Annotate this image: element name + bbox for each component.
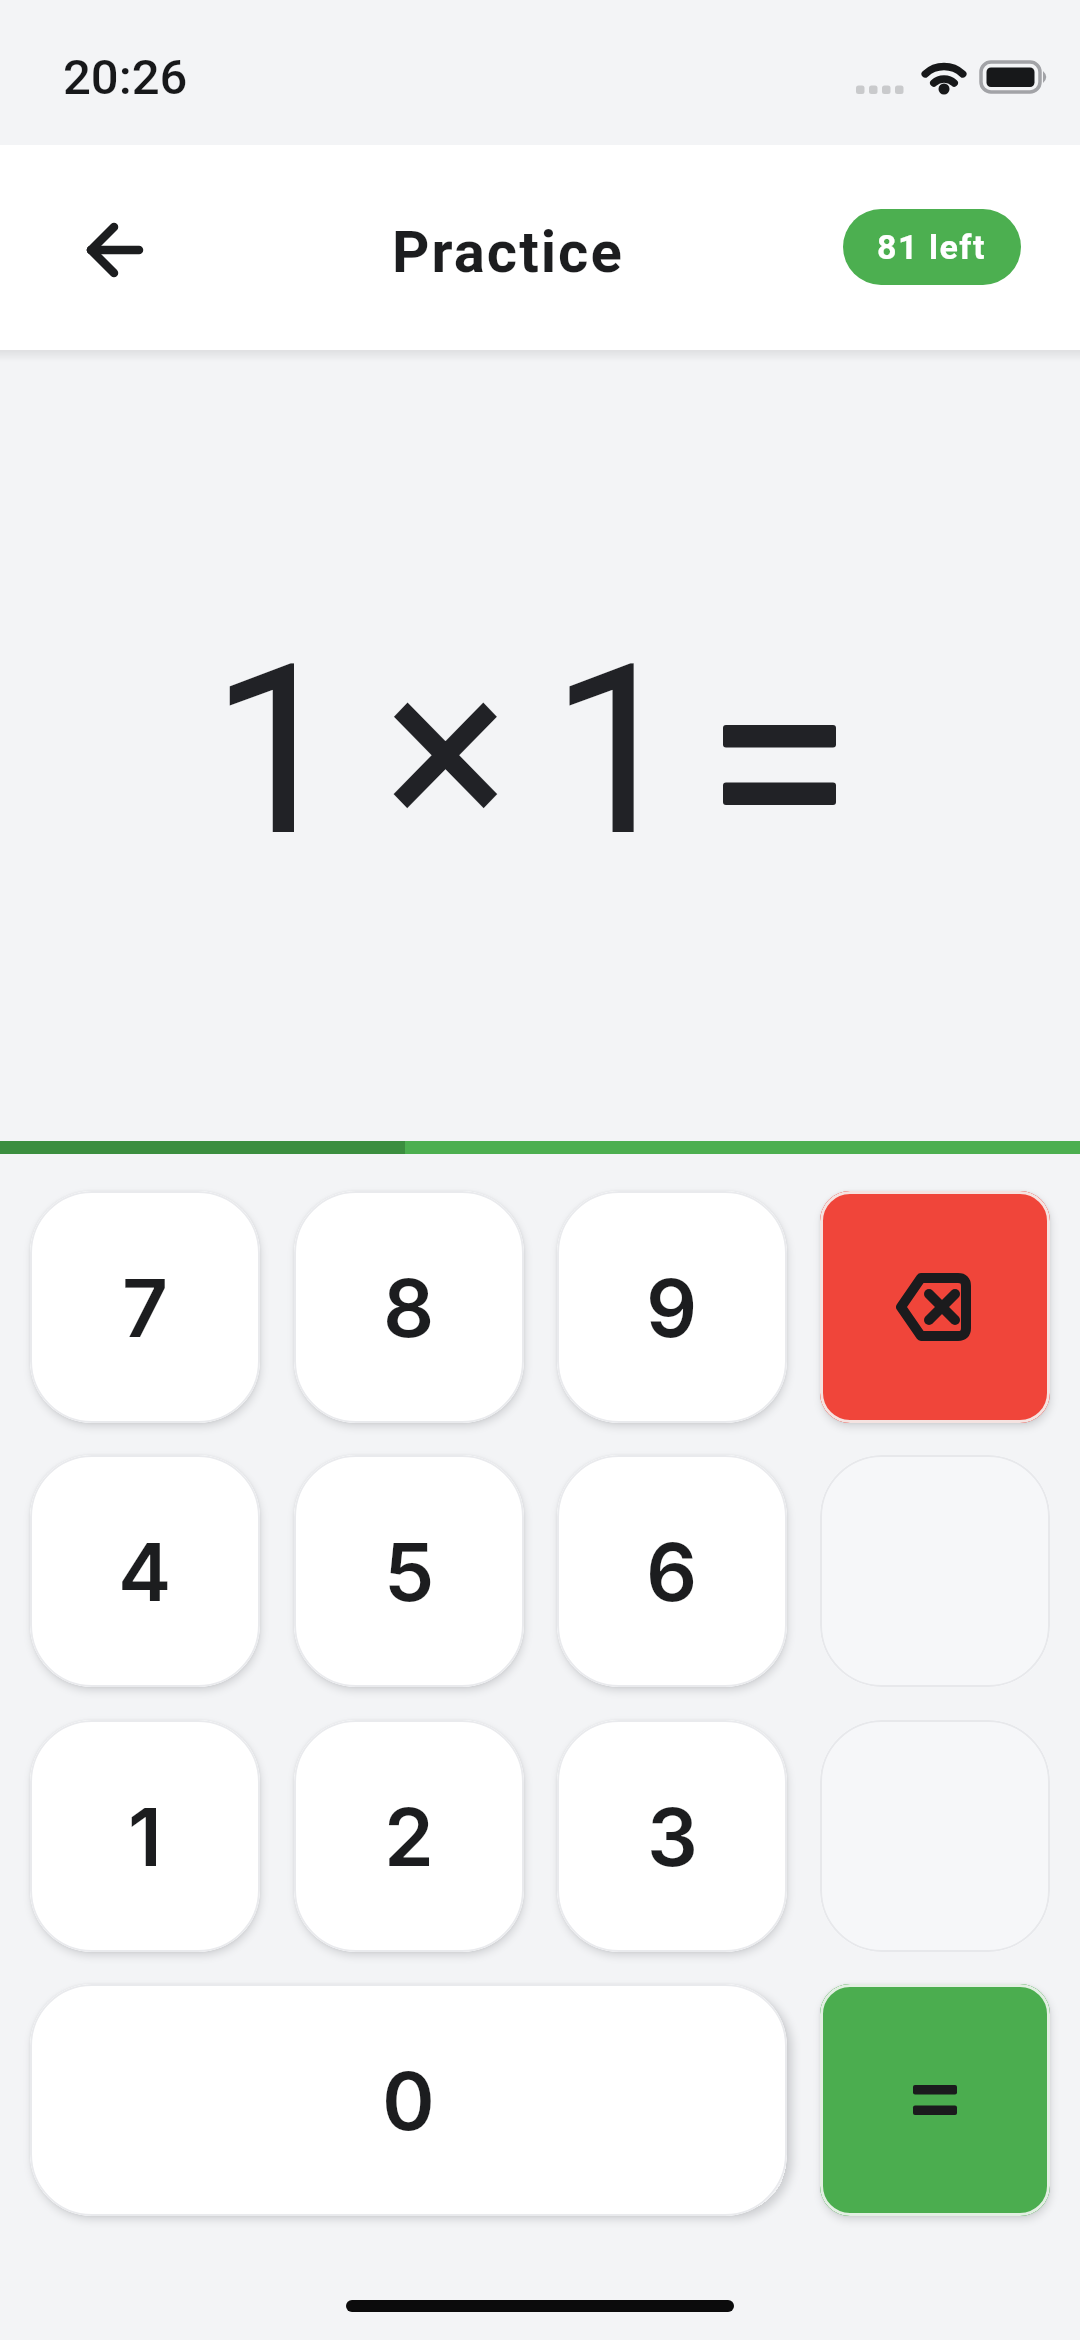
button[interactable]: 3 (557, 1720, 787, 1952)
staticText: 9 (646, 1259, 698, 1356)
button[interactable]: 6 (557, 1455, 787, 1687)
staticText: 0 (382, 2052, 435, 2149)
button[interactable]: 8 (294, 1191, 524, 1423)
button[interactable]: 4 (30, 1455, 260, 1687)
staticText: 20:26 (63, 49, 188, 106)
button[interactable]: 0 (30, 1984, 787, 2216)
button[interactable]: 2 (294, 1720, 524, 1952)
button[interactable]: 81 left (843, 209, 1021, 285)
staticText: 81 left (877, 227, 987, 267)
staticText: 4 (118, 1523, 172, 1620)
staticText: Practice (392, 218, 624, 286)
staticText: 6 (646, 1523, 698, 1620)
staticText: 1 × 1 (210, 613, 674, 890)
staticText: 5 (384, 1523, 435, 1620)
button[interactable] (70, 205, 160, 295)
button[interactable]: 5 (294, 1455, 524, 1687)
button[interactable]: 7 (30, 1191, 260, 1423)
staticText: 3 (647, 1788, 698, 1885)
button[interactable]: 9 (557, 1191, 787, 1423)
button[interactable] (820, 1191, 1050, 1423)
staticText: 2 (384, 1788, 434, 1885)
button[interactable]: 1 (30, 1720, 260, 1952)
staticText: 1 (128, 1788, 162, 1885)
button[interactable] (820, 1984, 1050, 2216)
staticText: 7 (122, 1259, 169, 1356)
staticText: 8 (383, 1259, 435, 1356)
